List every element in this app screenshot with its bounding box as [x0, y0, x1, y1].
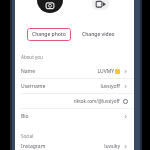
button[interactable]: Bio — [15, 109, 134, 123]
staticText: tiktok.com/@luvsiyoff — [74, 98, 120, 104]
button[interactable]: Change video — [92, 0, 109, 10]
staticText: LUVMY — [97, 68, 114, 75]
staticText: Bio — [21, 113, 29, 120]
staticText: About you — [21, 54, 43, 60]
staticText: Change video — [82, 31, 115, 38]
staticText: Change photo — [32, 31, 66, 38]
button[interactable]: Username — [15, 79, 134, 93]
staticText: luvsiky — [104, 143, 120, 150]
staticText: Username — [21, 83, 46, 90]
button[interactable]: Instagram — [15, 143, 134, 150]
staticText: Name — [21, 68, 36, 75]
other: Copy link — [123, 99, 128, 104]
button[interactable]: Change photo — [37, 0, 63, 13]
staticText: Social — [21, 133, 34, 139]
button[interactable]: Change photo — [27, 28, 71, 41]
staticText: Instagram — [21, 143, 46, 150]
button[interactable]: tiktok.com/@luvsiyoff — [15, 94, 134, 108]
button[interactable]: Name — [15, 64, 134, 78]
staticText: luvsiyoff — [100, 83, 120, 90]
button[interactable]: Change video — [79, 28, 118, 41]
